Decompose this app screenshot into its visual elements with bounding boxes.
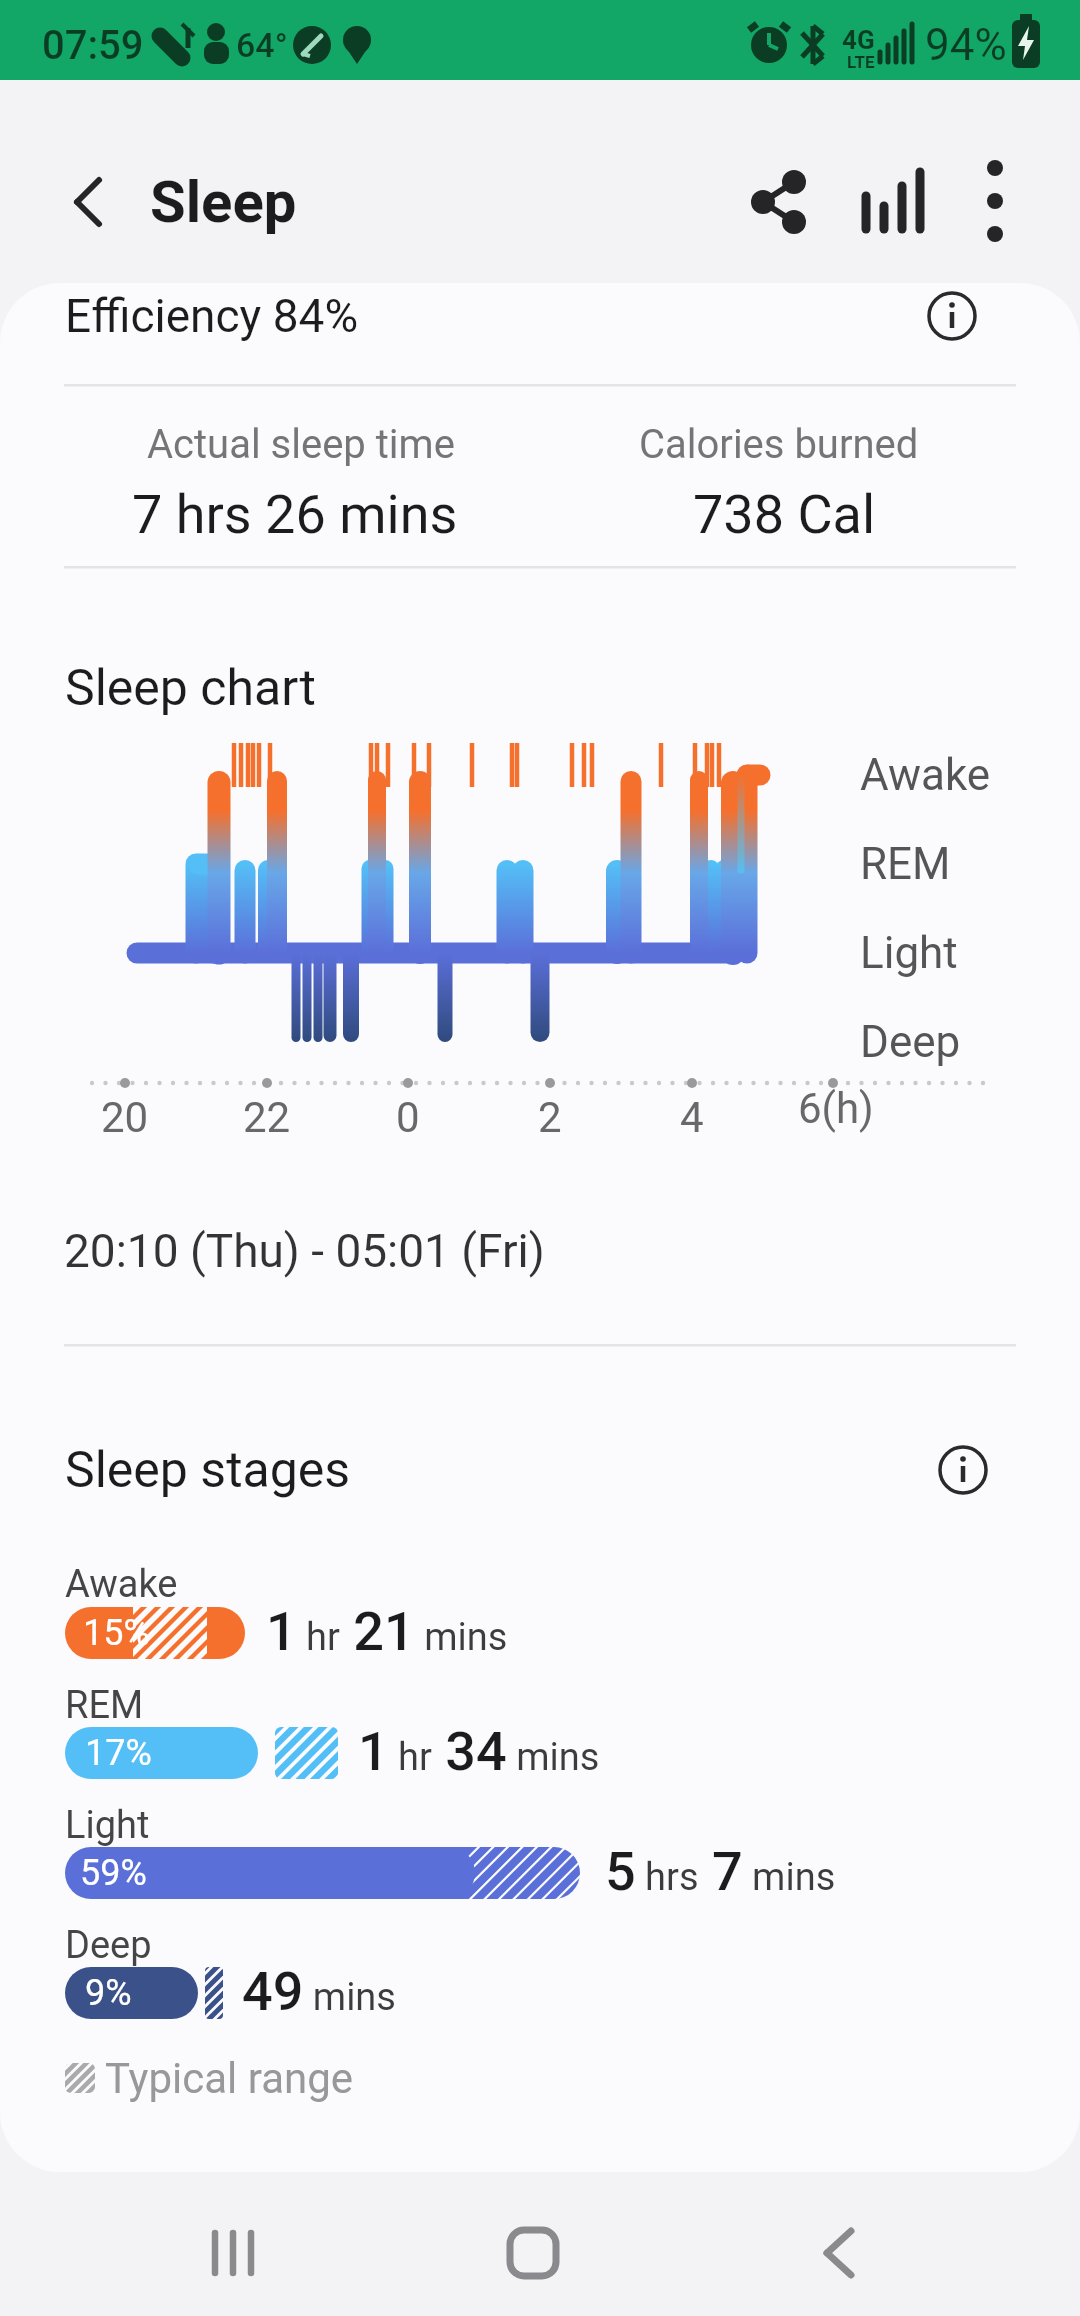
staticText: 59% <box>80 1852 147 1894</box>
staticText: 07:59 <box>42 22 144 69</box>
button[interactable] <box>912 276 992 356</box>
staticText: Awake <box>860 749 991 801</box>
button[interactable] <box>778 2213 898 2293</box>
staticText: Deep <box>860 1016 961 1068</box>
staticText: 49 mins <box>242 1960 396 2023</box>
button[interactable] <box>473 2213 593 2293</box>
staticText: 20:10 (Thu) - 05:01 (Fri) <box>64 1224 545 1278</box>
staticText: 1 hr 34 mins <box>358 1720 600 1783</box>
button[interactable] <box>923 1430 1003 1510</box>
button[interactable] <box>48 162 128 242</box>
staticText: 20 <box>101 1093 149 1142</box>
staticText: 94% <box>925 19 1007 71</box>
button[interactable] <box>853 161 933 241</box>
staticText: 1 hr 21 mins <box>266 1600 508 1663</box>
staticText: 738 Cal <box>693 483 876 546</box>
staticText: 15% <box>83 1612 150 1654</box>
staticText: Deep <box>65 1923 152 1968</box>
staticText: 64° <box>236 25 288 65</box>
staticText: 9% <box>85 1972 132 2014</box>
staticText: Light <box>65 1803 150 1848</box>
staticText: 7 hrs 26 mins <box>132 483 458 546</box>
staticText: Actual sleep time <box>147 421 455 468</box>
staticText: Efficiency 84% <box>65 289 359 343</box>
button[interactable] <box>173 2213 293 2293</box>
staticText: 0 <box>396 1093 420 1142</box>
staticText: REM <box>860 838 951 890</box>
staticText: 4G <box>842 25 875 55</box>
staticText: 5 hrs 7 mins <box>605 1840 836 1903</box>
staticText: Sleep stages <box>65 1441 351 1500</box>
staticText: Sleep <box>150 168 297 236</box>
staticText: Calories burned <box>639 421 919 468</box>
staticText: 2 <box>538 1093 562 1142</box>
staticText: Typical range <box>105 2054 354 2103</box>
staticText: 22 <box>243 1093 291 1142</box>
button[interactable] <box>955 161 1035 241</box>
staticText: Sleep chart <box>65 659 316 718</box>
button[interactable] <box>738 161 818 241</box>
staticText: Light <box>860 927 958 979</box>
staticText: 6(h) <box>798 1084 874 1133</box>
staticText: REM <box>65 1683 144 1728</box>
staticText: 4 <box>680 1093 704 1142</box>
staticText: LTE <box>847 52 875 72</box>
staticText: 17% <box>85 1732 152 1774</box>
staticText: Awake <box>65 1562 178 1607</box>
